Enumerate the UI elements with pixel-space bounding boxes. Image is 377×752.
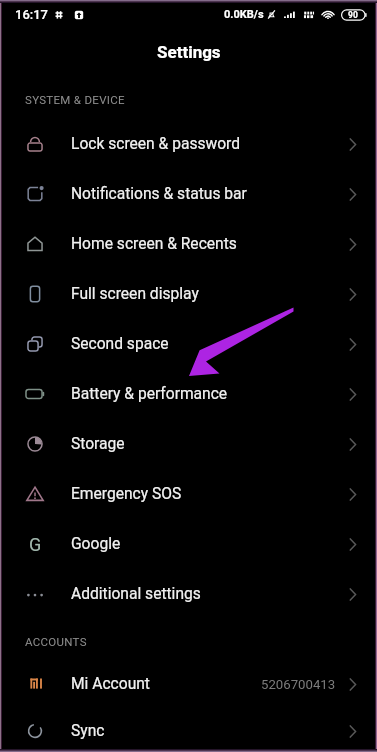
staticText: Notifications & status bar — [71, 185, 247, 203]
staticText: Lock screen & password — [71, 135, 241, 153]
button[interactable]: Additional settings — [0, 569, 377, 619]
button[interactable]: Lock screen & password — [0, 119, 377, 169]
button[interactable]: Mi Account — [0, 659, 377, 709]
button[interactable]: Emergency SOS — [0, 469, 377, 519]
button[interactable]: Full screen display — [0, 269, 377, 319]
staticText: 16:17 — [15, 7, 49, 22]
button[interactable]: Sync — [0, 706, 377, 752]
staticText: 5206700413 — [261, 677, 336, 692]
button[interactable]: Notifications & status bar — [0, 169, 377, 219]
staticText: Battery & performance — [71, 385, 228, 403]
staticText: Storage — [71, 435, 125, 453]
staticText: Google — [71, 535, 121, 553]
button[interactable]: Home screen & Recents — [0, 219, 377, 269]
staticText: 0.0KB/s — [224, 8, 264, 21]
staticText: Home screen & Recents — [71, 235, 237, 253]
button[interactable]: G — [0, 519, 377, 569]
staticText: ACCOUNTS — [25, 635, 87, 648]
staticText: Settings — [157, 42, 221, 62]
staticText: G — [29, 534, 42, 555]
staticText: Sync — [71, 722, 105, 740]
staticText: 90 — [348, 10, 358, 20]
staticText: Additional settings — [71, 585, 201, 603]
staticText: SYSTEM & DEVICE — [25, 93, 125, 106]
button[interactable]: Storage — [0, 419, 377, 469]
staticText: Full screen display — [71, 285, 199, 303]
staticText: Second space — [71, 335, 169, 353]
button[interactable]: Battery & performance — [0, 369, 377, 419]
button[interactable]: Second space — [0, 319, 377, 369]
staticText: Emergency SOS — [71, 485, 182, 503]
staticText: Mi Account — [71, 675, 150, 693]
